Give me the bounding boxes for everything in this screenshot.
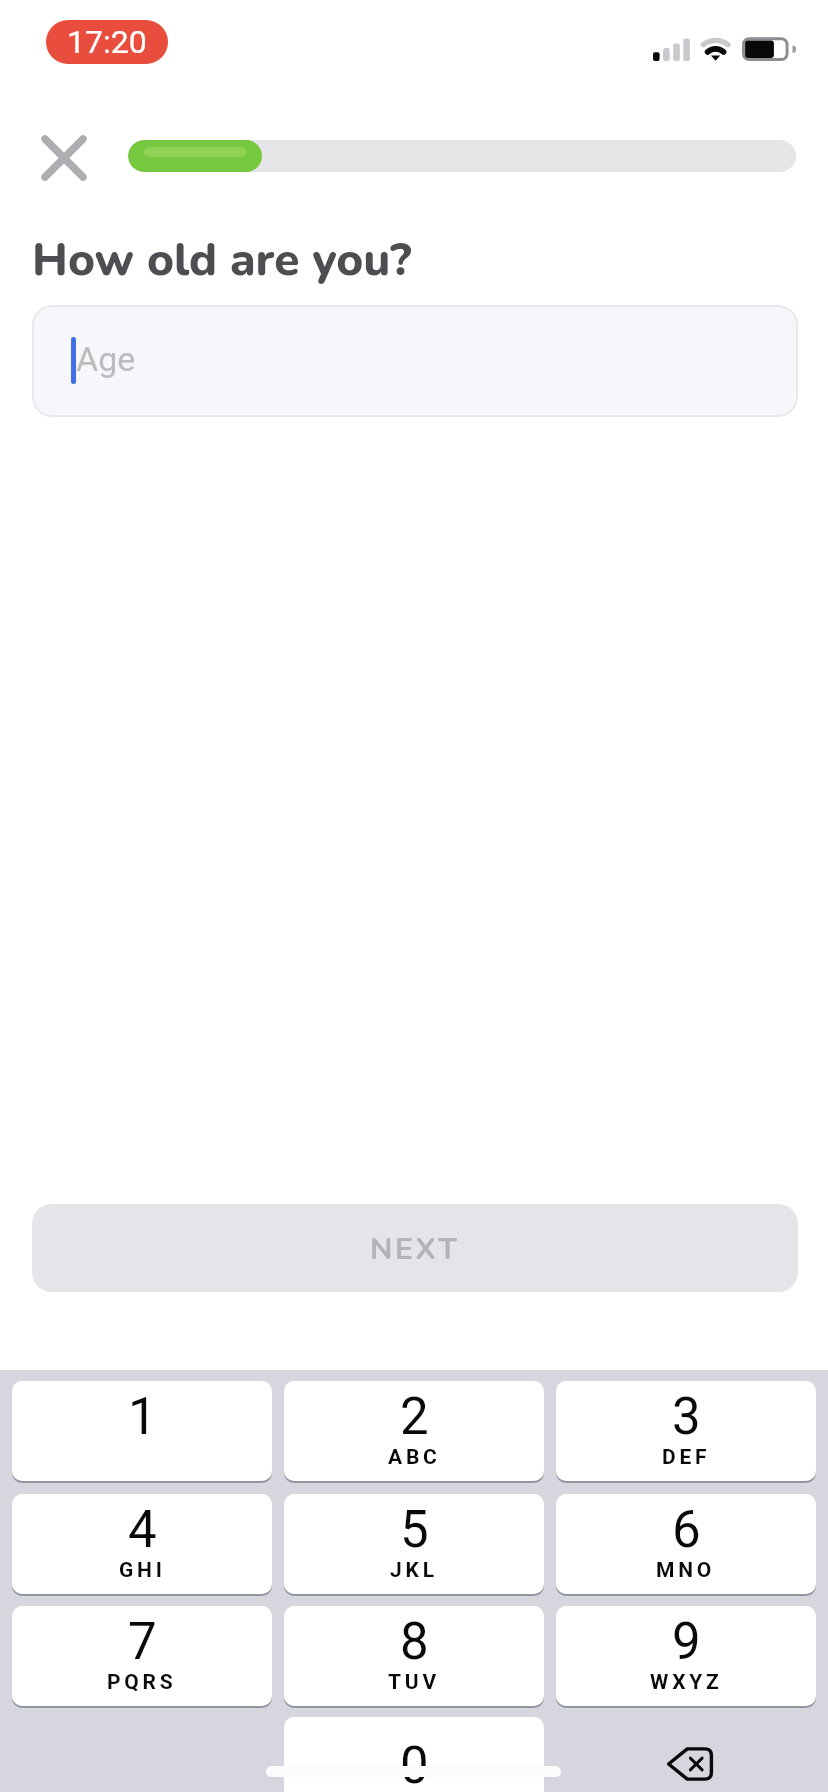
staticText: 0 <box>400 1736 429 1792</box>
button[interactable]: 9 <box>556 1606 816 1706</box>
staticText: Age <box>76 339 136 379</box>
staticText: 8 <box>400 1612 429 1672</box>
staticText: JKL <box>390 1558 438 1583</box>
staticText: ABC <box>388 1445 441 1470</box>
staticText: 3 <box>672 1387 701 1447</box>
button[interactable]: 3 <box>556 1381 816 1481</box>
staticText: WXYZ <box>650 1670 723 1695</box>
button[interactable]: 8 <box>284 1606 544 1706</box>
button[interactable]: 2 <box>284 1381 544 1481</box>
button[interactable]: Close <box>24 118 104 198</box>
button[interactable]: 1 <box>12 1381 272 1481</box>
button[interactable]: 4 <box>12 1494 272 1594</box>
staticText: 7 <box>128 1612 157 1672</box>
staticText: 17:20 <box>67 23 147 61</box>
button[interactable]: 0 <box>284 1717 544 1792</box>
button[interactable]: Age <box>32 305 798 417</box>
staticText: PQRS <box>107 1670 177 1695</box>
staticText: How old are you? <box>32 228 412 291</box>
staticText: 4 <box>128 1500 157 1560</box>
staticText: NEXT <box>370 1229 460 1270</box>
button[interactable]: 7 <box>12 1606 272 1706</box>
button[interactable]: 5 <box>284 1494 544 1594</box>
staticText: TUV <box>388 1670 440 1695</box>
staticText: DEF <box>662 1445 711 1470</box>
staticText: 1 <box>128 1387 157 1447</box>
button[interactable]: 6 <box>556 1494 816 1594</box>
staticText: 6 <box>672 1500 701 1560</box>
staticText: GHI <box>119 1558 166 1583</box>
staticText: 9 <box>672 1612 701 1672</box>
button[interactable]: NEXT <box>32 1204 798 1292</box>
staticText: 2 <box>400 1387 429 1447</box>
staticText: MNO <box>656 1558 716 1583</box>
button[interactable]: Backspace <box>560 1718 820 1792</box>
staticText: 5 <box>400 1500 429 1560</box>
